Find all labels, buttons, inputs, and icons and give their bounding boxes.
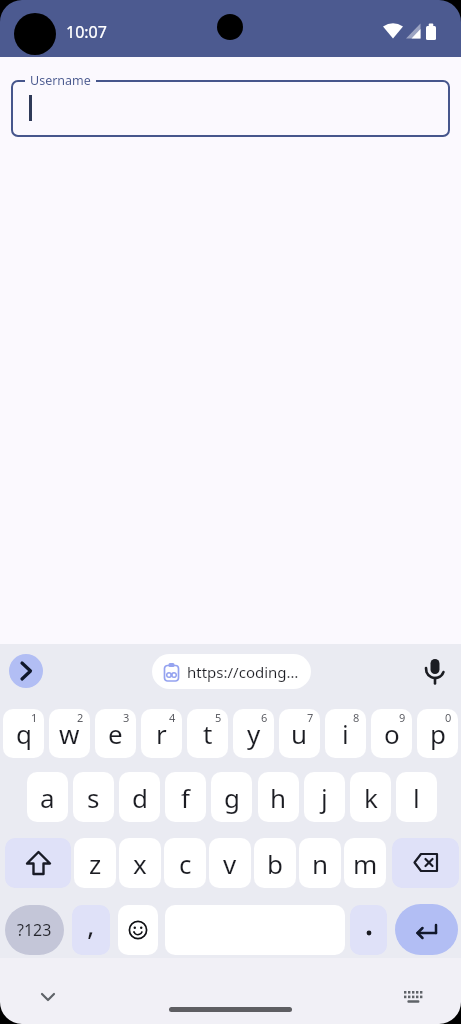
button[interactable]: x <box>119 838 161 888</box>
staticText: v <box>223 846 237 881</box>
staticText: n <box>312 846 329 881</box>
staticText: h <box>270 780 287 815</box>
staticText: m <box>353 846 378 881</box>
button[interactable]: h <box>258 772 299 822</box>
button[interactable] <box>9 654 43 688</box>
button[interactable]: p <box>417 709 458 758</box>
staticText: 6 <box>261 710 268 725</box>
button[interactable] <box>395 904 458 955</box>
button[interactable] <box>5 838 71 888</box>
staticText: e <box>108 716 123 751</box>
button[interactable] <box>398 985 430 1017</box>
button[interactable]: d <box>119 772 160 822</box>
button[interactable]: t <box>187 709 228 758</box>
staticText: s <box>87 780 100 815</box>
staticText: 9 <box>399 710 406 725</box>
staticText: g <box>224 780 240 815</box>
button[interactable]: u <box>279 709 320 758</box>
staticText: c <box>179 846 192 881</box>
staticText: 3 <box>123 710 130 725</box>
staticText: r <box>156 716 167 751</box>
button[interactable]: https://coding… <box>152 654 311 689</box>
button[interactable]: i <box>325 709 366 758</box>
staticText: i <box>342 716 349 751</box>
button[interactable] <box>118 905 158 955</box>
staticText: b <box>267 846 283 881</box>
button[interactable]: k <box>350 772 391 822</box>
staticText: o <box>384 716 400 751</box>
staticText: 2 <box>77 710 84 725</box>
staticText: t <box>203 716 213 751</box>
staticText: u <box>291 716 308 751</box>
button[interactable]: g <box>211 772 252 822</box>
button[interactable] <box>32 982 64 1014</box>
button[interactable]: a <box>27 772 68 822</box>
staticText: 5 <box>215 710 222 725</box>
button[interactable]: b <box>254 838 296 888</box>
staticText: y <box>247 716 261 751</box>
staticText: 7 <box>307 710 314 725</box>
staticText: f <box>181 780 190 815</box>
staticText: , <box>87 905 95 943</box>
button[interactable] <box>11 80 450 137</box>
button[interactable]: r <box>141 709 182 758</box>
button[interactable]: f <box>165 772 206 822</box>
staticText: 1 <box>31 710 38 725</box>
button[interactable]: w <box>49 709 90 758</box>
button[interactable]: n <box>299 838 341 888</box>
staticText: w <box>59 716 80 751</box>
button[interactable]: e <box>95 709 136 758</box>
staticText: ?123 <box>17 919 52 941</box>
staticText: l <box>413 780 420 815</box>
staticText: Username <box>30 72 91 89</box>
button[interactable]: j <box>304 772 345 822</box>
button[interactable]: q <box>3 709 44 758</box>
button[interactable]: y <box>233 709 274 758</box>
staticText: 10:07 <box>66 21 107 43</box>
staticText: x <box>133 846 147 881</box>
button[interactable] <box>421 658 449 686</box>
button[interactable]: c <box>164 838 206 888</box>
button[interactable]: o <box>371 709 412 758</box>
button[interactable] <box>392 838 459 888</box>
staticText: k <box>364 780 378 815</box>
button[interactable]: l <box>396 772 437 822</box>
button[interactable]: , <box>72 905 110 955</box>
staticText: a <box>40 780 55 815</box>
staticText: q <box>16 716 32 751</box>
button[interactable]: m <box>344 838 386 888</box>
staticText: 0 <box>445 710 452 725</box>
button[interactable]: z <box>74 838 116 888</box>
staticText: 4 <box>169 710 176 725</box>
staticText: j <box>321 780 328 815</box>
staticText: z <box>89 846 102 881</box>
staticText: p <box>430 716 446 751</box>
button[interactable]: s <box>73 772 114 822</box>
button[interactable]: ?123 <box>5 905 64 955</box>
staticText: d <box>132 780 148 815</box>
staticText: 8 <box>353 710 360 725</box>
button[interactable] <box>350 905 387 955</box>
button[interactable]: v <box>209 838 251 888</box>
staticText: https://coding… <box>187 662 299 682</box>
